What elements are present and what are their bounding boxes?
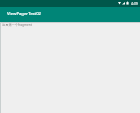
button[interactable]: ViewPagerTest02	[0, 7, 140, 22]
staticText: ViewPagerTest02	[7, 11, 42, 17]
staticText: 这是第一个fragment	[2, 23, 32, 27]
staticText: 4:39	[131, 1, 138, 6]
